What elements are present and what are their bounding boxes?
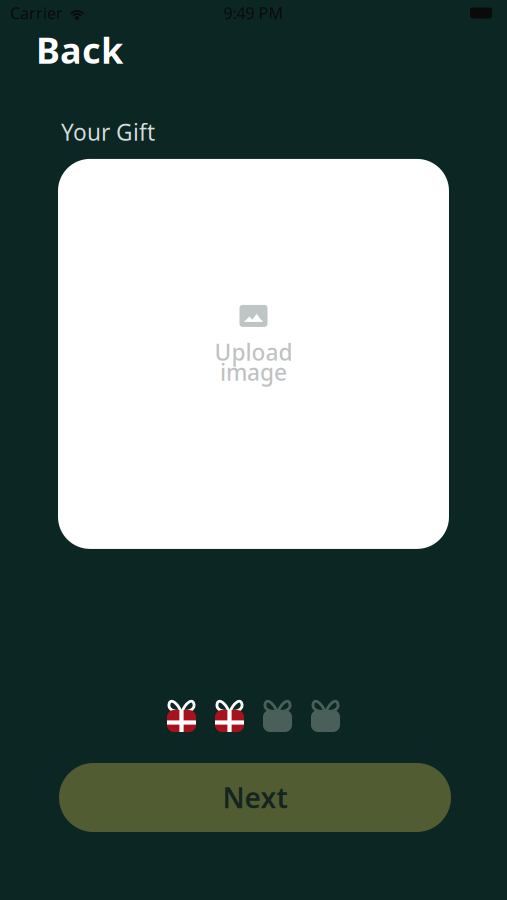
button[interactable]: Step 1, completed [165, 698, 197, 732]
staticText: Your Gift [61, 117, 155, 147]
button[interactable]: Step 2, current [213, 698, 245, 732]
staticText: 9:49 PM [223, 2, 283, 24]
staticText: Upload [214, 337, 292, 367]
button[interactable]: Next [59, 763, 451, 832]
staticText: Next [222, 779, 287, 816]
button[interactable]: Back [0, 26, 507, 77]
staticText: image [220, 357, 287, 387]
button[interactable]: Step 3 [261, 698, 293, 732]
button[interactable]: Upload image [58, 159, 449, 549]
button[interactable]: Step 4 [309, 698, 341, 732]
staticText: Carrier [10, 2, 63, 24]
staticText: Back [36, 26, 123, 74]
